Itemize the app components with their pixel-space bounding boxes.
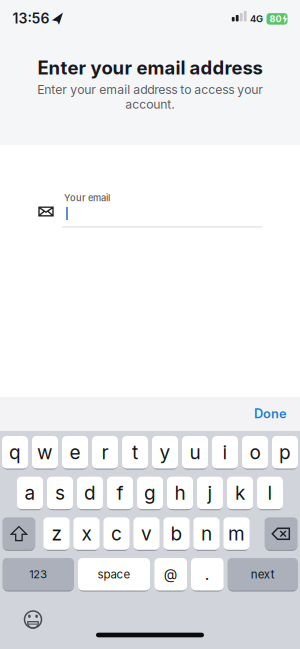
button[interactable]: d <box>77 477 103 509</box>
button[interactable]: i <box>212 436 238 468</box>
button[interactable]: u <box>182 436 208 468</box>
staticText: 80 <box>269 13 281 24</box>
staticText: space <box>97 567 130 581</box>
button[interactable]: j <box>197 477 223 509</box>
staticText: Enter your email address <box>37 57 262 79</box>
staticText: h <box>174 481 185 504</box>
staticText: . <box>205 565 210 584</box>
staticText: g <box>144 481 156 504</box>
button[interactable]: y <box>152 436 178 468</box>
button[interactable]: t <box>122 436 148 468</box>
staticText: e <box>69 441 80 464</box>
button[interactable]: k <box>227 477 253 509</box>
staticText: i <box>222 441 227 464</box>
staticText: l <box>267 481 272 504</box>
button[interactable]: n <box>193 517 219 550</box>
staticText: Enter your email address to access your … <box>37 82 263 112</box>
button[interactable]: a <box>17 477 43 509</box>
button[interactable]: o <box>242 436 268 468</box>
button[interactable]: @ <box>154 558 187 590</box>
staticText: q <box>9 441 21 464</box>
button[interactable]: v <box>133 517 159 550</box>
button[interactable]: p <box>272 436 298 468</box>
button[interactable] <box>2 517 35 550</box>
button[interactable]: g <box>137 477 163 509</box>
staticText: Your email <box>64 192 110 203</box>
staticText: y <box>159 441 170 464</box>
button[interactable]: r <box>92 436 118 468</box>
button[interactable]: m <box>223 517 249 550</box>
staticText: w <box>37 441 53 464</box>
staticText: 123 <box>29 568 47 581</box>
button[interactable]: q <box>2 436 28 468</box>
staticText: t <box>132 441 138 464</box>
staticText: 4G <box>250 13 263 24</box>
staticText: Done <box>254 406 287 421</box>
button[interactable]: space <box>78 558 150 590</box>
staticText: k <box>235 481 245 504</box>
button[interactable]: next <box>227 558 298 590</box>
button[interactable] <box>265 517 298 550</box>
staticText: next <box>251 567 275 581</box>
staticText: 13:56 <box>12 10 49 27</box>
button[interactable]: Done <box>245 396 295 430</box>
staticText: o <box>249 441 260 464</box>
button[interactable]: h <box>167 477 193 509</box>
staticText: n <box>201 522 212 545</box>
button[interactable]: l <box>257 477 283 509</box>
button[interactable]: x <box>73 517 99 550</box>
button[interactable]: . <box>191 558 223 590</box>
staticText: b <box>170 522 182 545</box>
staticText: s <box>55 481 65 504</box>
staticText: x <box>81 522 91 545</box>
staticText: r <box>101 441 108 464</box>
staticText: v <box>141 522 152 545</box>
button[interactable]: 123 <box>2 558 74 590</box>
staticText: f <box>116 481 123 504</box>
button[interactable]: w <box>32 436 58 468</box>
button[interactable]: c <box>103 517 129 550</box>
staticText: @ <box>164 566 178 583</box>
button[interactable]: Your email <box>0 160 300 240</box>
button[interactable]: f <box>107 477 133 509</box>
staticText: c <box>111 522 122 545</box>
button[interactable]: b <box>163 517 189 550</box>
staticText: a <box>24 481 35 504</box>
staticText: m <box>228 522 245 545</box>
staticText: z <box>51 522 61 545</box>
staticText: u <box>189 441 200 464</box>
button[interactable]: e <box>62 436 88 468</box>
staticText: p <box>279 441 291 464</box>
button[interactable]: s <box>47 477 73 509</box>
staticText: j <box>207 481 212 504</box>
button[interactable] <box>17 603 49 635</box>
button[interactable]: z <box>43 517 69 550</box>
staticText: d <box>84 481 96 504</box>
